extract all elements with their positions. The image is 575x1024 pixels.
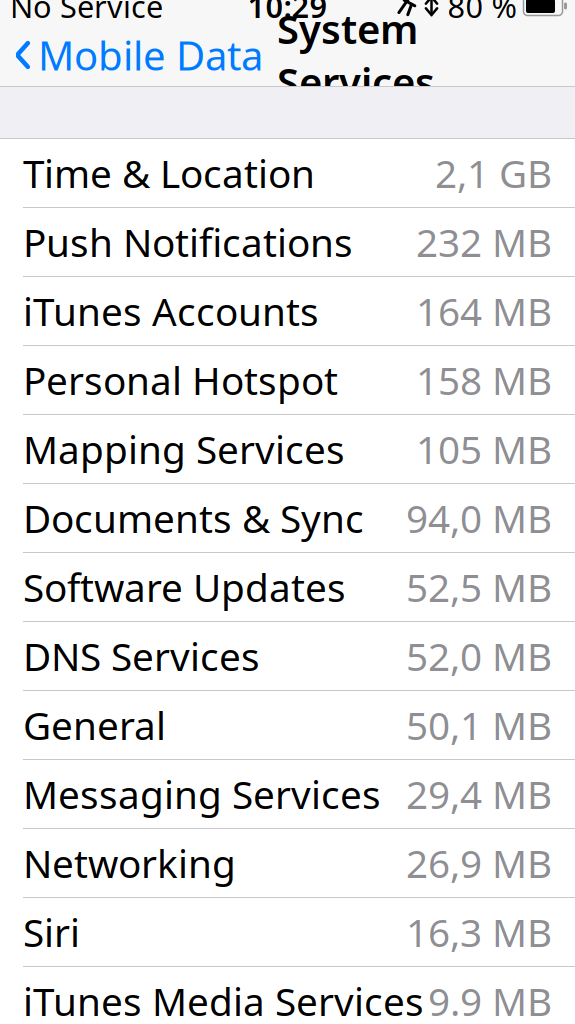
staticText: 164 MB [416,285,552,337]
staticText: 105 MB [416,423,552,475]
staticText: Messaging Services [23,768,381,820]
staticText: Software Updates [23,561,346,613]
staticText: iTunes Media Services [23,975,424,1024]
staticText: 26,9 MB [406,837,552,889]
staticText: General [23,699,166,751]
button[interactable]: General [0,691,575,760]
button[interactable]: Siri [0,898,575,967]
button[interactable]: iTunes Accounts [0,277,575,346]
staticText: 50,1 MB [406,699,552,751]
staticText: 158 MB [416,354,552,406]
button[interactable]: Software Updates [0,553,575,622]
staticText: 9.9 MB [428,975,552,1024]
staticText: System Services [277,2,435,108]
button[interactable]: iTunes Media Services [0,967,575,1024]
staticText: 80 % [447,0,516,26]
staticText: Push Notifications [23,216,353,268]
staticText: No Service [10,0,163,26]
staticText: 52,0 MB [406,630,552,682]
button[interactable]: Messaging Services [0,760,575,829]
staticText: Personal Hotspot [23,354,338,406]
staticText: Networking [23,837,236,889]
button[interactable]: Mobile Data [0,24,269,86]
button[interactable]: Time & Location [0,139,575,208]
staticText: Mobile Data [38,28,263,81]
button[interactable]: Personal Hotspot [0,346,575,415]
button[interactable]: Mapping Services [0,415,575,484]
staticText: 29,4 MB [406,768,552,820]
staticText: 2,1 GB [435,147,552,199]
staticText: iTunes Accounts [23,285,319,337]
staticText: 94,0 MB [406,492,552,544]
staticText: 232 MB [416,216,552,268]
button[interactable]: Documents & Sync [0,484,575,553]
staticText: 52,5 MB [406,561,552,613]
button[interactable]: Push Notifications [0,208,575,277]
button[interactable]: DNS Services [0,622,575,691]
staticText: Mapping Services [23,423,345,475]
staticText: 16,3 MB [406,906,552,958]
staticText: Siri [23,906,80,958]
staticText: Time & Location [23,147,315,199]
staticText: Documents & Sync [23,492,364,544]
button[interactable]: Networking [0,829,575,898]
staticText: DNS Services [23,630,260,682]
staticText: 10:29 [247,0,327,26]
